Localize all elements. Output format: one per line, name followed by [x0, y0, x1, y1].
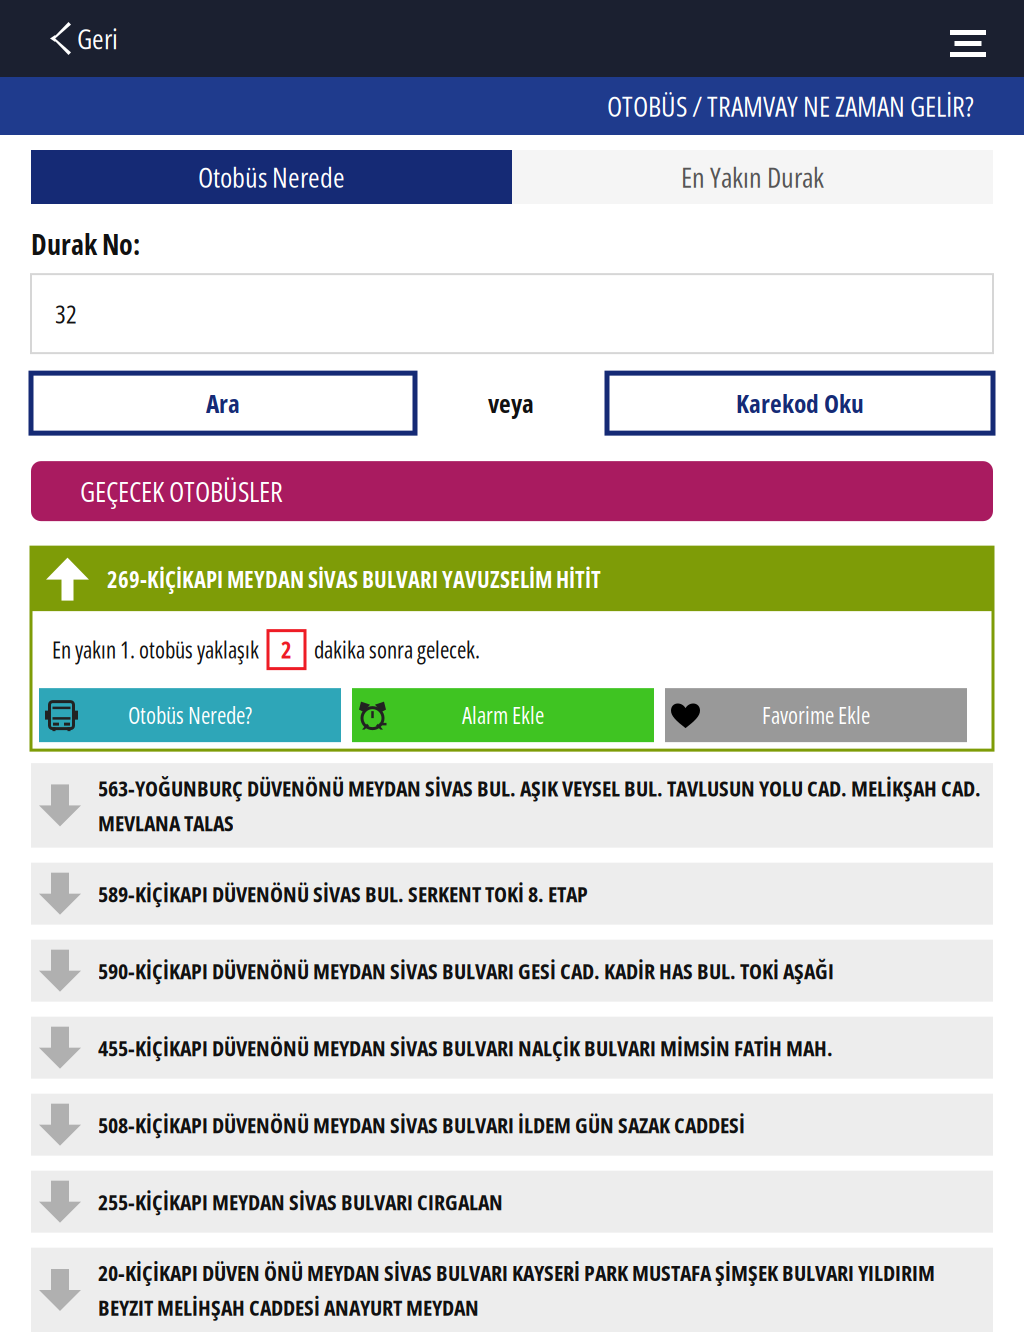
- button[interactable]: Karekod Oku: [607, 373, 993, 433]
- staticText: dakika sonra gelecek.: [314, 634, 480, 665]
- staticText: Otobüs Nerede?: [128, 700, 252, 731]
- button[interactable]: Geri: [0, 0, 126, 77]
- button[interactable]: 455-KİÇİKAPI DÜVENÖNÜ MEYDAN SİVAS BULVA…: [31, 1017, 993, 1079]
- staticText: Alarm Ekle: [462, 700, 544, 731]
- staticText: 2: [281, 634, 292, 665]
- button[interactable]: En Yakın Durak: [512, 150, 993, 204]
- staticText: En yakın 1. otobüs yaklaşık: [52, 634, 259, 665]
- button[interactable]: Menu: [950, 0, 1024, 77]
- staticText: Geri: [77, 19, 118, 57]
- staticText: 269-KİÇİKAPI MEYDAN SİVAS BULVARI YAVUZS…: [107, 564, 601, 595]
- staticText: 255-KİÇİKAPI MEYDAN SİVAS BULVARI CIRGAL…: [98, 1187, 503, 1217]
- staticText: 455-KİÇİKAPI DÜVENÖNÜ MEYDAN SİVAS BULVA…: [98, 1033, 833, 1063]
- button[interactable]: 589-KİÇİKAPI DÜVENÖNÜ SİVAS BUL. SERKENT…: [31, 863, 993, 925]
- staticText: 20-KİÇİKAPI DÜVEN ÖNÜ MEYDAN SİVAS BULVA…: [98, 1258, 935, 1322]
- staticText: Favorime Ekle: [762, 700, 870, 731]
- button[interactable]: Ara: [31, 373, 415, 433]
- staticText: 508-KİÇİKAPI DÜVENÖNÜ MEYDAN SİVAS BULVA…: [98, 1110, 745, 1140]
- button[interactable]: Otobüs Nerede?: [39, 688, 341, 742]
- button[interactable]: Otobüs Nerede: [31, 150, 512, 204]
- button[interactable]: 563-YOĞUNBURÇ DÜVENÖNÜ MEYDAN SİVAS BUL.…: [31, 763, 993, 848]
- staticText: 590-KİÇİKAPI DÜVENÖNÜ MEYDAN SİVAS BULVA…: [98, 956, 834, 986]
- button[interactable]: 255-KİÇİKAPI MEYDAN SİVAS BULVARI CIRGAL…: [31, 1171, 993, 1233]
- staticText: Karekod Oku: [736, 386, 864, 420]
- staticText: Durak No:: [31, 225, 140, 263]
- staticText: OTOBÜS / TRAMVAY NE ZAMAN GELİR?: [607, 87, 974, 125]
- staticText: 32: [55, 296, 77, 331]
- staticText: 563-YOĞUNBURÇ DÜVENÖNÜ MEYDAN SİVAS BUL.…: [98, 773, 981, 838]
- button[interactable]: 20-KİÇİKAPI DÜVEN ÖNÜ MEYDAN SİVAS BULVA…: [31, 1248, 993, 1332]
- staticText: Otobüs Nerede: [198, 158, 345, 196]
- staticText: 589-KİÇİKAPI DÜVENÖNÜ SİVAS BUL. SERKENT…: [98, 879, 588, 909]
- staticText: veya: [488, 386, 534, 420]
- button[interactable]: Favorime Ekle: [665, 688, 967, 742]
- staticText: GEÇECEK OTOBÜSLER: [80, 472, 283, 510]
- staticText: Ara: [206, 386, 240, 420]
- button[interactable]: 508-KİÇİKAPI DÜVENÖNÜ MEYDAN SİVAS BULVA…: [31, 1094, 993, 1156]
- button[interactable]: 590-KİÇİKAPI DÜVENÖNÜ MEYDAN SİVAS BULVA…: [31, 940, 993, 1002]
- button[interactable]: Alarm Ekle: [352, 688, 654, 742]
- staticText: En Yakın Durak: [681, 158, 824, 196]
